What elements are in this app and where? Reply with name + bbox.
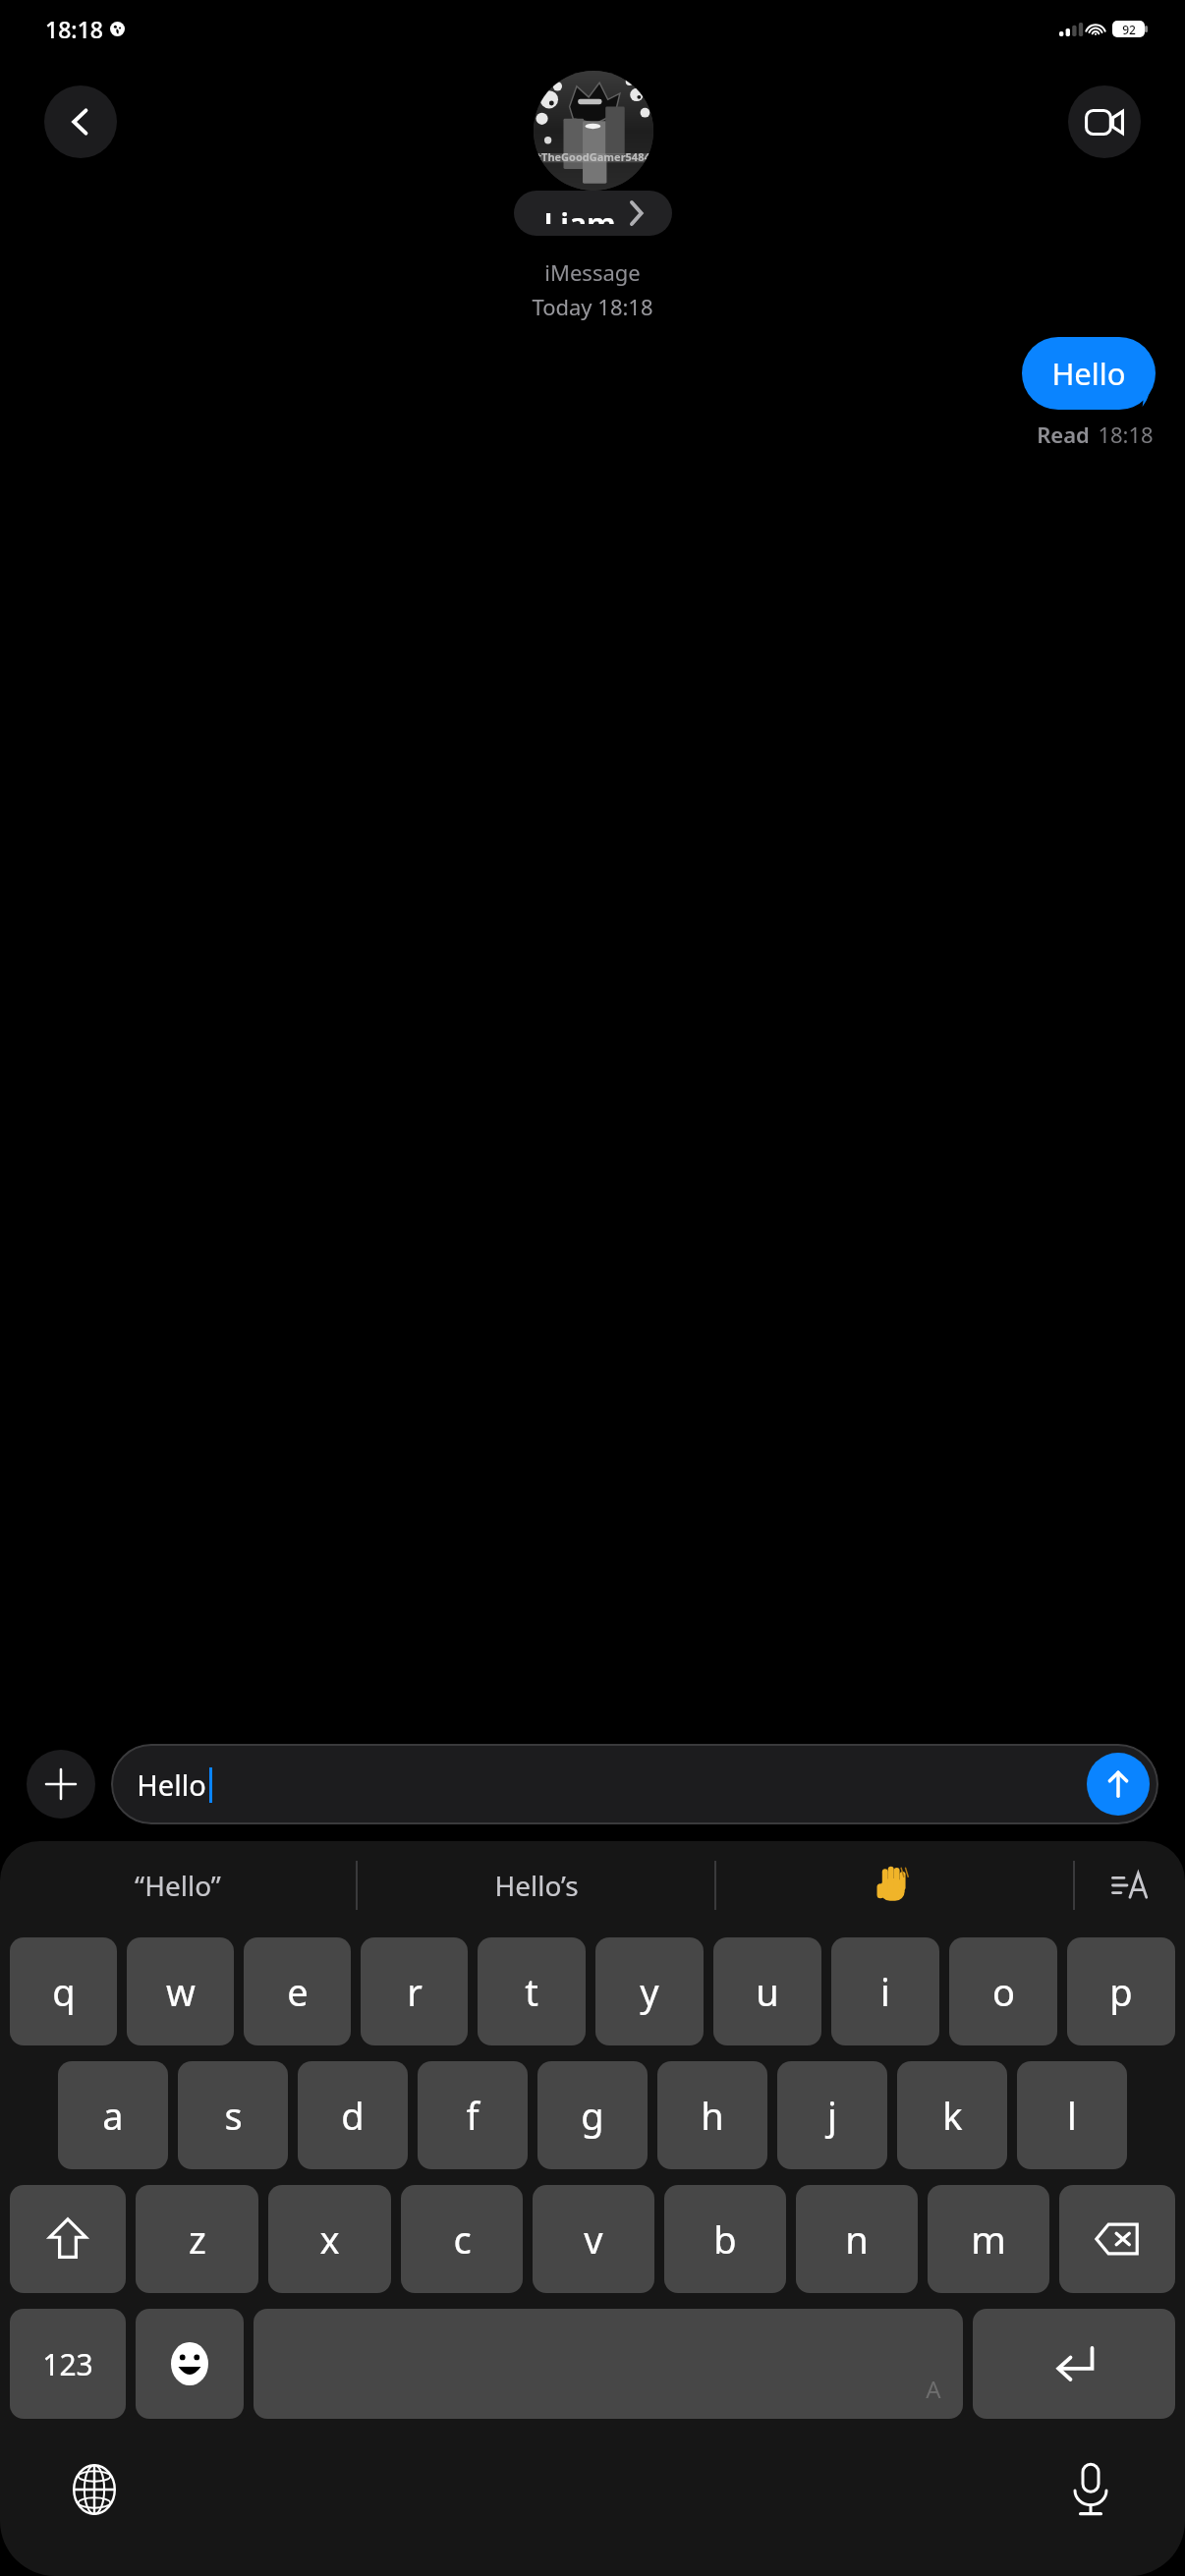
staticText: x [319, 2213, 340, 2265]
staticText: z [189, 2213, 206, 2265]
button[interactable]: Return [973, 2309, 1175, 2419]
staticText: 18:18 [1098, 420, 1154, 449]
button[interactable]: a [58, 2061, 168, 2169]
button[interactable]: z [136, 2185, 258, 2293]
button[interactable]: FaceTime video call [1068, 85, 1141, 158]
staticText: 123 [42, 2344, 93, 2384]
staticText: “Hello” [135, 1867, 221, 1904]
button[interactable]: l [1017, 2061, 1127, 2169]
button[interactable]: Hello [111, 1744, 1158, 1824]
button[interactable]: g [537, 2061, 648, 2169]
button[interactable]: Hello [1022, 337, 1156, 410]
button[interactable]: r [361, 1937, 468, 2045]
button[interactable]: Backspace [1059, 2185, 1175, 2293]
button[interactable]: e [244, 1937, 351, 2045]
staticText: p [1109, 1966, 1133, 2017]
button[interactable]: m [928, 2185, 1049, 2293]
staticText: y [640, 1966, 659, 2017]
button[interactable]: Shift [10, 2185, 126, 2293]
staticText: i [880, 1966, 890, 2017]
staticText: 92 [1122, 22, 1136, 37]
button[interactable]: “Hello” [0, 1841, 356, 1930]
staticText: g [581, 2090, 604, 2141]
staticText: n [845, 2213, 869, 2265]
button[interactable]: f [418, 2061, 528, 2169]
button[interactable]: v [533, 2185, 654, 2293]
staticText: k [942, 2090, 963, 2141]
button[interactable]: Send [1087, 1753, 1150, 1816]
button[interactable]: c [401, 2185, 523, 2293]
staticText: Hello [137, 1765, 206, 1804]
button[interactable]: d [298, 2061, 408, 2169]
staticText: c [453, 2213, 472, 2265]
button[interactable]: Back [44, 85, 117, 158]
staticText: e [287, 1966, 309, 2017]
staticText: tTheGoodGamer5484 [536, 149, 650, 164]
staticText: v [584, 2213, 603, 2265]
button[interactable]: q [10, 1937, 117, 2045]
staticText: u [756, 1966, 779, 2017]
staticText: m [971, 2213, 1006, 2265]
button[interactable]: Liam [514, 191, 672, 236]
button[interactable]: x [268, 2185, 391, 2293]
staticText: h [701, 2090, 724, 2141]
staticText: b [713, 2213, 737, 2265]
staticText: t [525, 1966, 538, 2017]
button[interactable]: u [713, 1937, 821, 2045]
button[interactable]: 123 [10, 2309, 126, 2419]
button[interactable] [716, 1841, 1073, 1930]
staticText: Today 18:18 [532, 292, 653, 321]
button[interactable]: s [178, 2061, 288, 2169]
staticText: A [926, 2373, 941, 2405]
staticText: o [992, 1966, 1015, 2017]
staticText: l [1067, 2090, 1077, 2141]
button[interactable]: p [1067, 1937, 1175, 2045]
button[interactable]: Hello’s [358, 1841, 714, 1930]
button[interactable]: Text formatting [1075, 1841, 1185, 1930]
button[interactable]: t [478, 1937, 586, 2045]
button[interactable]: k [897, 2061, 1007, 2169]
button[interactable]: n [796, 2185, 918, 2293]
button[interactable]: Emoji [136, 2309, 244, 2419]
button[interactable]: i [831, 1937, 939, 2045]
staticText: q [52, 1966, 76, 2017]
staticText: f [466, 2090, 480, 2141]
staticText: Read [1037, 420, 1090, 449]
staticText: w [166, 1966, 196, 2017]
button[interactable]: o [949, 1937, 1057, 2045]
staticText: d [341, 2090, 365, 2141]
button[interactable]: Dictation [1045, 2444, 1136, 2535]
staticText: r [407, 1966, 423, 2017]
button[interactable]: b [664, 2185, 786, 2293]
button[interactable]: Add attachment [27, 1750, 95, 1819]
staticText: a [102, 2090, 124, 2141]
staticText: 18:18 [45, 14, 103, 44]
staticText: j [827, 2090, 837, 2141]
button[interactable]: h [657, 2061, 767, 2169]
staticText: Hello [1051, 353, 1126, 394]
staticText: s [224, 2090, 243, 2141]
staticText: iMessage [544, 257, 641, 287]
staticText: Hello’s [494, 1867, 579, 1904]
button[interactable]: w [127, 1937, 234, 2045]
staticText: Liam [543, 202, 616, 224]
button[interactable]: y [595, 1937, 704, 2045]
button[interactable]: j [777, 2061, 887, 2169]
button[interactable]: Switch keyboard language [49, 2444, 140, 2535]
